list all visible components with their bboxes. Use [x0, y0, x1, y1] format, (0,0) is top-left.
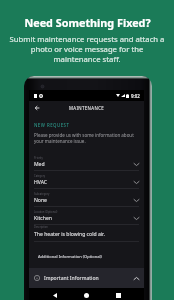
staticText: MAINTENANCE: [69, 105, 105, 111]
staticText: Kitchen: [34, 215, 52, 222]
staticText: The heater is blowing cold air.: [34, 231, 105, 238]
button[interactable]: Recents: [112, 289, 125, 300]
staticText: Important Information: [44, 275, 99, 282]
staticText: Submit maintenance requests and attach a…: [9, 34, 165, 64]
button[interactable]: Home: [80, 289, 93, 300]
button[interactable]: Subcategory: [34, 192, 139, 210]
staticText: Med: [34, 161, 45, 168]
staticText: Please provide us with some information …: [34, 132, 139, 144]
button[interactable]: Location (Optional): [34, 210, 139, 225]
staticText: Need Something Fixed?: [24, 15, 151, 30]
staticText: Location (Optional): [34, 210, 58, 214]
staticText: Subcategory: [34, 192, 50, 196]
staticText: Priority: [34, 156, 43, 160]
button[interactable]: Back: [48, 289, 61, 300]
staticText: Category: [34, 174, 46, 178]
staticText: Description: [34, 225, 48, 229]
staticText: Additional Information (Optional): [38, 254, 102, 259]
button[interactable]: Priority: [34, 156, 139, 174]
button[interactable]: Important Information: [29, 268, 144, 288]
button[interactable]: Back: [31, 102, 42, 113]
button[interactable]: Category: [34, 174, 139, 192]
staticText: 9:02: [131, 93, 140, 99]
staticText: None: [34, 197, 47, 204]
staticText: NEW REQUEST: [34, 122, 70, 128]
staticText: HVAC: [34, 179, 47, 186]
